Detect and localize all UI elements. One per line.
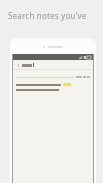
button[interactable]: Back bbox=[10, 38, 96, 183]
staticText: Search notes you've written bbox=[8, 10, 103, 21]
button[interactable]: Back bbox=[15, 62, 21, 68]
